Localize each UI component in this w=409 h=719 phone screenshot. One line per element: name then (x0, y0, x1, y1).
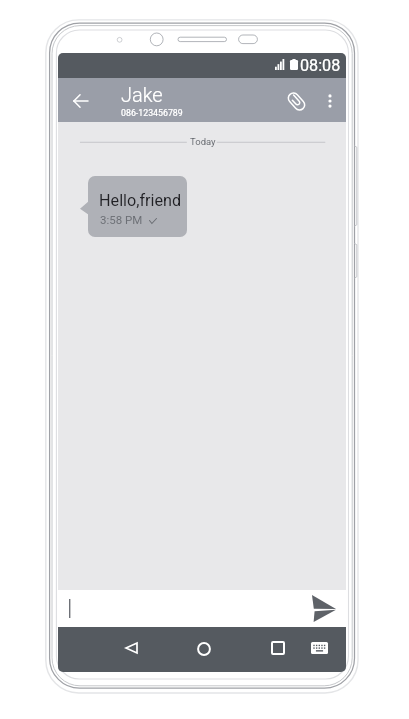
button[interactable]: Hello,friend (88, 176, 187, 237)
button[interactable]: Keyboard (307, 636, 331, 660)
button[interactable]: Send (310, 592, 337, 624)
button[interactable]: More options (316, 87, 344, 115)
button[interactable]: Home (189, 634, 219, 664)
button[interactable]: Back (63, 84, 97, 118)
staticText: Hello,friend (99, 191, 182, 210)
staticText: 086-123456789 (121, 108, 183, 118)
staticText: Today (190, 136, 216, 147)
button[interactable]: Back (116, 633, 146, 663)
staticText: 3:58 PM (100, 213, 143, 226)
button[interactable]: Recents (263, 633, 293, 663)
button[interactable]: Attach file (279, 84, 313, 118)
staticText: Jake (121, 83, 163, 106)
staticText: 08:08 (300, 56, 341, 75)
